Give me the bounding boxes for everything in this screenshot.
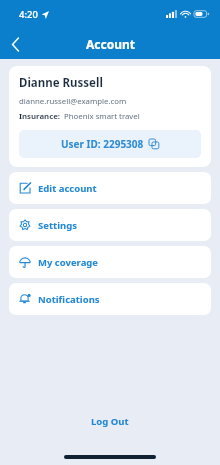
staticText: 4:20 [19,8,38,21]
staticText: Insurance: [19,111,61,122]
staticText: Dianne Russell [19,75,103,91]
button[interactable]: User ID: 2295308 [19,130,201,158]
staticText: dianne.russell@example.com [19,96,127,107]
button[interactable]: Edit account [9,172,211,204]
button[interactable]: Notifications [9,283,211,315]
button[interactable]: Log Out [0,415,220,428]
staticText: Account [86,36,135,52]
button[interactable]: Back [0,29,30,59]
button[interactable]: Settings [9,209,211,241]
staticText: User ID: 2295308 [61,137,144,151]
staticText: Settings [38,219,77,232]
staticText: Notifications [38,293,100,306]
staticText: Phoenix smart travel [64,111,140,122]
button[interactable]: My coverage [9,246,211,278]
staticText: Log Out [91,415,129,428]
staticText: Edit account [38,182,97,195]
staticText: My coverage [38,256,99,269]
